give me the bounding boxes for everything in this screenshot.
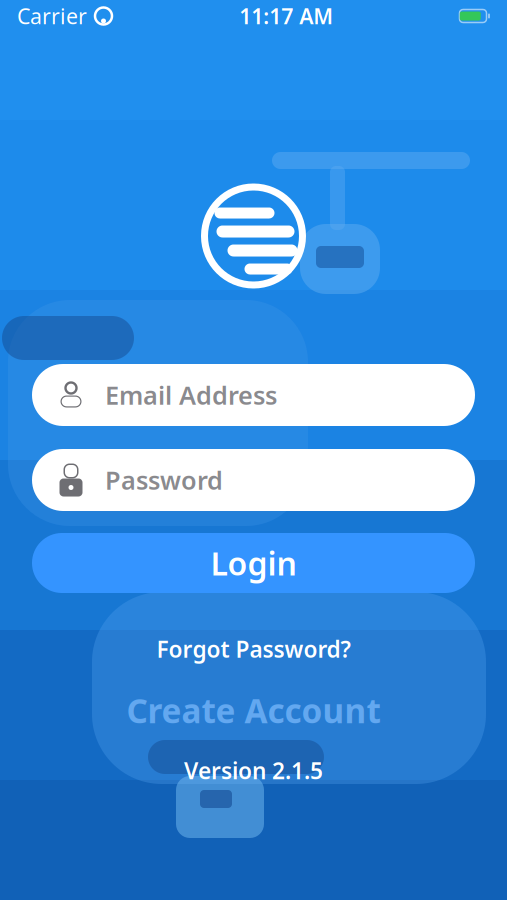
staticText: 11:17 AM [239,2,333,30]
staticText: Version 2.1.5 [184,755,323,785]
staticText: Create Account [126,688,380,732]
staticText: Login [210,542,296,584]
staticText: Email Address [105,378,277,412]
button[interactable]: Login [32,533,475,593]
staticText: Carrier [17,2,87,30]
staticText: Password [105,463,223,497]
button[interactable]: Forgot Password? [140,629,366,669]
staticText: Forgot Password? [156,634,350,664]
button[interactable]: Create Account [110,683,396,737]
